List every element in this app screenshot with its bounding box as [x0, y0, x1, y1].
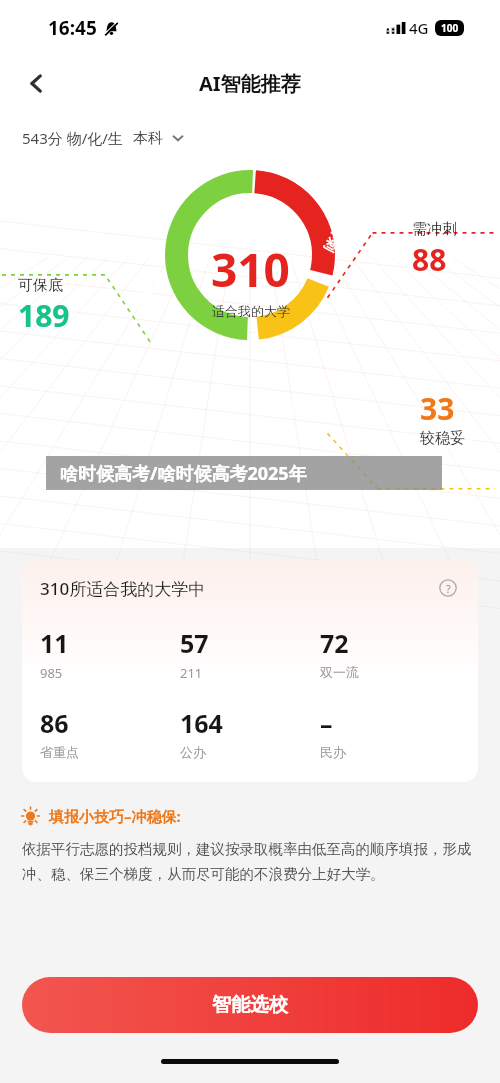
button[interactable]: Back [14, 61, 58, 105]
staticText: 189 [18, 295, 70, 336]
staticText: 适合我的大学 [212, 303, 290, 319]
staticText: 11 [40, 626, 69, 660]
staticText: AI智能推荐 [199, 70, 301, 97]
staticText: 4G [409, 18, 429, 38]
staticText: 省重点 [40, 744, 79, 760]
staticText: 智能选校 [212, 993, 288, 1017]
staticText: 100 [441, 21, 459, 35]
staticText: 543分 物/化/生 [22, 128, 123, 148]
button[interactable]: 智能选校 [22, 977, 478, 1033]
staticText: 33 [420, 388, 455, 429]
staticText: 民办 [320, 744, 346, 760]
staticText: 164 [180, 706, 223, 740]
staticText: 需冲刺 [321, 213, 354, 255]
staticText: 依据平行志愿的投档规则，建议按录取概率由低至高的顺序填报，形成冲、稳、保三个梯度… [22, 840, 478, 883]
staticText: 88 [412, 239, 447, 280]
staticText: ? [446, 581, 451, 596]
staticText: 啥时候高考/啥时候高考2025年 [60, 461, 307, 486]
staticText: 双一流 [320, 664, 359, 680]
staticText: 985 [40, 664, 63, 682]
staticText: – [320, 706, 333, 740]
staticText: 可保底 [18, 276, 63, 295]
staticText: 公办 [180, 744, 206, 760]
staticText: 72 [320, 626, 349, 660]
button[interactable]: Help [436, 576, 460, 600]
staticText: 本科 [133, 129, 163, 148]
staticText: 57 [180, 626, 209, 660]
staticText: 较稳妥 [420, 429, 465, 448]
staticText: 211 [180, 664, 203, 682]
staticText: 需冲刺 [412, 220, 457, 239]
staticText: 310 [211, 238, 290, 301]
staticText: 310所适合我的大学中 [40, 577, 206, 600]
staticText: 16:45 [48, 15, 97, 41]
button[interactable]: 543分 物/化/生 [22, 128, 185, 148]
staticText: 填报小技巧–冲稳保: [49, 806, 181, 826]
staticText: 86 [40, 706, 69, 740]
